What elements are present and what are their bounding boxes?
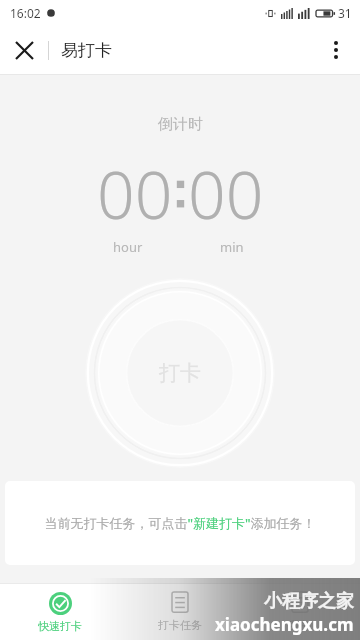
- staticText: 小程序之家: [264, 590, 354, 613]
- staticText: xiaochengxu.cm: [215, 613, 354, 636]
- staticText: 31: [338, 5, 352, 21]
- staticText: hour: [113, 238, 143, 256]
- staticText: 打卡: [159, 360, 201, 386]
- staticText: 打卡任务: [158, 618, 202, 632]
- button[interactable]: Close: [0, 26, 48, 74]
- staticText: 16:02: [10, 5, 41, 21]
- staticText: 易打卡: [61, 40, 112, 61]
- button[interactable]: 快速打卡: [0, 584, 120, 640]
- staticText: 00: [188, 148, 264, 238]
- button[interactable]: 打卡任务: [120, 584, 240, 640]
- staticText: min: [220, 238, 244, 256]
- staticText: 快速打卡: [38, 619, 82, 633]
- button[interactable]: More options: [312, 26, 360, 74]
- button[interactable]: 我的: [240, 584, 360, 640]
- staticText: 当前无打卡任务，可点击"新建打卡"添加任务！: [44, 514, 316, 532]
- staticText: 倒计时: [158, 115, 203, 134]
- button[interactable]: 打卡: [85, 278, 275, 468]
- button[interactable]: 当前无打卡任务，可点击"新建打卡"添加任务！: [5, 481, 355, 565]
- staticText: 我的: [289, 618, 311, 632]
- staticText: 00: [97, 148, 173, 238]
